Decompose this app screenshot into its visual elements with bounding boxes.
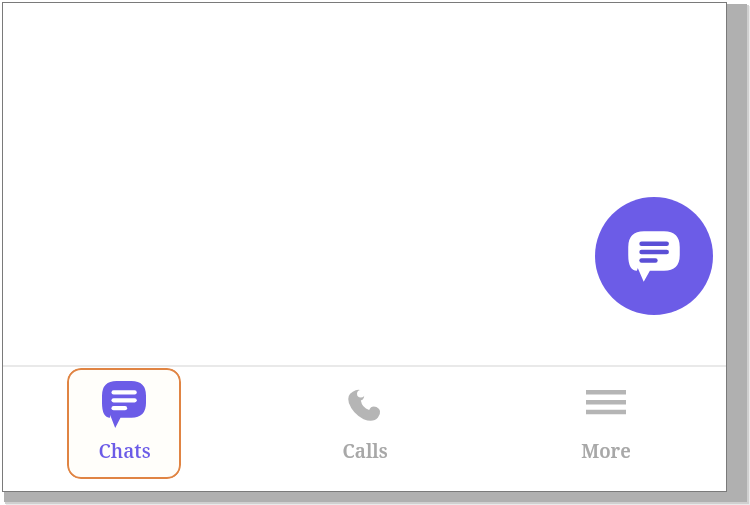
staticText: Chats — [98, 438, 151, 464]
button[interactable]: Calls — [308, 368, 422, 479]
staticText: More — [581, 438, 631, 464]
button[interactable]: New chat — [595, 197, 713, 315]
button[interactable]: More — [549, 368, 663, 479]
button[interactable]: Chats — [67, 368, 181, 479]
staticText: Calls — [342, 438, 388, 464]
